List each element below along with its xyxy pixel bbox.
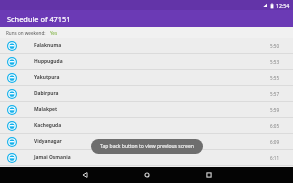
staticText: Falaknuma (34, 42, 62, 49)
other: Train stop (7, 137, 17, 147)
button[interactable]: Train stop (0, 38, 293, 53)
staticText: 5:55 (270, 75, 280, 81)
button[interactable]: Recent apps (178, 167, 240, 183)
staticText: Kacheguda (34, 122, 62, 129)
button[interactable]: Train stop (0, 54, 293, 69)
staticText: Vidyanagar (34, 138, 62, 145)
button[interactable]: Train stop (0, 118, 293, 133)
staticText: Huppuguda (34, 58, 63, 65)
staticText: 6:05 (270, 123, 280, 129)
staticText: 6:09 (270, 139, 280, 145)
button[interactable]: Train stop (0, 102, 293, 117)
staticText: 6:11 (270, 155, 280, 161)
staticText: Malakpet (34, 106, 58, 113)
other: Train stop (7, 105, 17, 115)
staticText: 5:53 (270, 59, 280, 65)
staticText: 5:50 (270, 43, 280, 49)
button[interactable]: Schedule of 47151 (0, 10, 293, 27)
staticText: 12:54 (276, 2, 290, 9)
staticText: Yakutpura (34, 74, 60, 81)
button[interactable]: Train stop (0, 70, 293, 85)
staticText: 5:57 (270, 91, 280, 97)
staticText: 5:59 (270, 107, 280, 113)
button[interactable]: Home (116, 167, 178, 183)
button[interactable]: Back (54, 167, 116, 183)
staticText: Schedule of 47151 (7, 14, 71, 24)
other: Train stop (7, 121, 17, 131)
other: Train stop (7, 153, 17, 163)
other: Train stop (7, 73, 17, 83)
button[interactable]: Train stop (0, 150, 293, 165)
other: Train stop (7, 41, 17, 51)
button[interactable]: Train stop (0, 86, 293, 101)
other: Train stop (7, 57, 17, 67)
staticText: Tap back button to view previous screen (100, 143, 194, 150)
button[interactable]: Train stop (0, 134, 293, 149)
other: Train stop (7, 89, 17, 99)
staticText: Runs on weekend: (6, 30, 46, 36)
staticText: Jamai Osmania (34, 154, 71, 161)
staticText: Dabirpura (34, 90, 59, 97)
staticText: Yes (50, 30, 58, 36)
